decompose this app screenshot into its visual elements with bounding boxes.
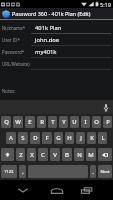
staticText: 5:19 [100,1,111,8]
button[interactable]: Password 360 - 401k Plan (Edit) [0,8,113,19]
staticText: V [53,151,57,159]
staticText: P [106,118,110,126]
button[interactable]: H [65,132,74,144]
button[interactable]: Password* [0,46,113,58]
staticText: I [84,118,87,126]
staticText: G [56,134,61,142]
staticText: , [22,168,24,175]
button[interactable]: F [42,132,52,144]
staticText: S [21,134,25,142]
button[interactable]: U [70,116,79,128]
staticText: URL/Website) [2,61,30,67]
button[interactable]: V [50,148,60,161]
staticText: D [33,134,38,142]
button[interactable]: User ID* [0,34,113,46]
button[interactable]: Y [59,116,68,128]
button[interactable]: N [74,148,84,161]
button[interactable]: K [87,132,96,144]
staticText: T [51,118,55,126]
staticText: Next [100,169,110,175]
button[interactable]: ?123 [1,165,17,178]
staticText: N [77,151,82,159]
staticText: john.doe [35,36,60,44]
staticText: Notes: [2,88,16,94]
staticText: L [101,134,105,142]
button[interactable]: Hide keyboard [0,180,45,200]
button[interactable]: G [54,132,63,144]
button[interactable]: . [90,165,96,178]
button[interactable]: I [81,116,90,128]
button[interactable]: L [98,132,107,144]
button[interactable]: T [48,116,57,128]
button[interactable]: Shift [1,148,14,161]
button[interactable]: D [30,132,40,144]
button[interactable]: E [25,116,35,128]
button[interactable]: URL/Website) [0,58,113,70]
staticText: Q [4,118,9,126]
button[interactable]: M [86,148,96,161]
button[interactable]: X [27,148,36,161]
button[interactable]: Recent apps [69,180,104,200]
button[interactable]: Q [1,116,11,128]
button[interactable]: Next [98,165,112,178]
button[interactable]: R [37,116,46,128]
staticText: Nickname* [2,25,26,31]
staticText: J [80,134,82,142]
button[interactable]: Z [16,148,25,161]
staticText: Password* [2,49,25,55]
button[interactable]: , [19,165,26,178]
button[interactable]: W [13,116,23,128]
staticText: W [15,118,21,126]
staticText: B [65,151,69,159]
button[interactable]: Voice input [0,100,113,114]
staticText: ?123 [4,169,14,175]
staticText: my401k [35,48,57,56]
staticText: U [72,118,77,126]
other: Voice input [104,104,108,111]
button[interactable]: B [62,148,72,161]
staticText: O [94,118,99,126]
button[interactable]: C [38,148,48,161]
button[interactable]: O [92,116,101,128]
button[interactable]: Home [45,180,69,200]
staticText: User ID* [2,37,20,43]
staticText: 401k Plan [35,24,62,32]
staticText: . [92,168,94,175]
button[interactable]: P [103,116,112,128]
staticText: C [41,151,45,159]
staticText: A [9,134,13,142]
staticText: R [40,118,44,126]
button[interactable]: J [76,132,85,144]
staticText: F [45,134,49,142]
button[interactable]: S [18,132,28,144]
staticText: K [90,134,94,142]
staticText: E [28,118,32,126]
staticText: Y [62,118,66,126]
button[interactable]: Backspace [98,148,112,161]
staticText: Z [19,151,23,159]
staticText: M [88,151,94,159]
staticText: H [67,134,72,142]
staticText: Password 360 - 401k Plan (Edit) [12,10,91,17]
staticText: X [30,151,34,159]
button[interactable]: A [6,132,16,144]
button[interactable]: Nickname* [0,22,113,34]
